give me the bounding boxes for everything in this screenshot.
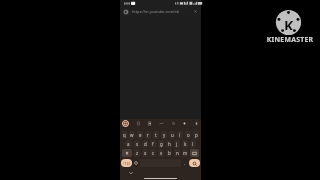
staticText: n xyxy=(176,150,179,156)
staticText: a xyxy=(127,141,130,147)
button[interactable]: p xyxy=(193,131,199,139)
staticText: p xyxy=(195,132,198,138)
button[interactable]: l xyxy=(190,140,196,148)
button[interactable]: Keyboard tool 4 xyxy=(171,121,176,126)
button[interactable]: o xyxy=(185,131,191,139)
button[interactable]: Close xyxy=(193,9,198,14)
staticText: u xyxy=(171,132,174,138)
button[interactable]: f xyxy=(150,140,156,148)
staticText: s xyxy=(136,141,139,147)
staticText: d xyxy=(144,141,147,147)
button[interactable]: a xyxy=(125,140,132,148)
staticText: K xyxy=(284,16,294,30)
button[interactable]: Emoji xyxy=(133,159,139,167)
staticText: y xyxy=(163,132,166,138)
button[interactable]: Keyboard tool 1 xyxy=(136,121,141,126)
button[interactable]: Shift xyxy=(122,149,132,157)
staticText: r xyxy=(147,132,149,138)
staticText: . xyxy=(184,160,186,166)
staticText: k xyxy=(184,141,187,147)
button[interactable]: e xyxy=(137,131,143,139)
staticText: l xyxy=(192,141,194,147)
staticText: g xyxy=(160,141,163,147)
button[interactable]: t xyxy=(153,131,159,139)
button[interactable]: c xyxy=(150,149,156,157)
button[interactable]: b xyxy=(166,149,172,157)
staticText: h xyxy=(168,141,171,147)
button[interactable]: Keyboard tool 5 xyxy=(182,121,187,126)
staticText: i xyxy=(179,132,181,138)
button[interactable]: h xyxy=(166,140,172,148)
button[interactable]: q xyxy=(122,131,127,139)
button[interactable]: w xyxy=(129,131,135,139)
button[interactable]: Keyboard tool 2 xyxy=(147,121,152,126)
staticText: t xyxy=(155,132,157,138)
button[interactable]: n xyxy=(174,149,180,157)
staticText: ?123 xyxy=(123,161,131,166)
button[interactable]: s xyxy=(134,140,140,148)
button[interactable]: Keyboard tool 3 xyxy=(159,121,164,126)
staticText: j xyxy=(176,141,178,147)
button[interactable]: v xyxy=(158,149,164,157)
staticText: q xyxy=(123,132,126,138)
button[interactable]: Search xyxy=(189,159,200,167)
button[interactable]: z xyxy=(134,149,140,157)
staticText: e xyxy=(139,132,142,138)
staticText: z xyxy=(136,150,139,156)
button[interactable]: u xyxy=(169,131,175,139)
staticText: v xyxy=(160,150,163,156)
button[interactable]: Google search xyxy=(122,120,129,127)
staticText: c xyxy=(152,150,155,156)
staticText: w xyxy=(130,132,134,138)
staticText: KINEMASTER xyxy=(264,35,316,44)
button[interactable]: ?123 xyxy=(121,159,132,167)
staticText: https://m.youtube.com/ab xyxy=(132,9,179,14)
staticText: x xyxy=(144,150,147,156)
staticText: m xyxy=(183,150,188,156)
staticText: b xyxy=(168,150,171,156)
button[interactable]: i xyxy=(177,131,183,139)
button[interactable]: k xyxy=(182,140,188,148)
button[interactable]: g xyxy=(158,140,164,148)
button[interactable]: m xyxy=(182,149,188,157)
button[interactable]: Keyboard tool 6 xyxy=(194,121,199,126)
staticText: o xyxy=(187,132,190,138)
button[interactable]: Google xyxy=(123,9,129,15)
button[interactable]: r xyxy=(145,131,151,139)
button[interactable]: y xyxy=(161,131,167,139)
button[interactable]: j xyxy=(174,140,180,148)
staticText: f xyxy=(152,141,154,147)
button[interactable]: Backspace xyxy=(190,149,199,157)
button[interactable]: d xyxy=(142,140,148,148)
button[interactable]: Hide keyboard xyxy=(128,170,134,176)
button[interactable]: Period xyxy=(182,159,188,167)
button[interactable]: x xyxy=(142,149,148,157)
